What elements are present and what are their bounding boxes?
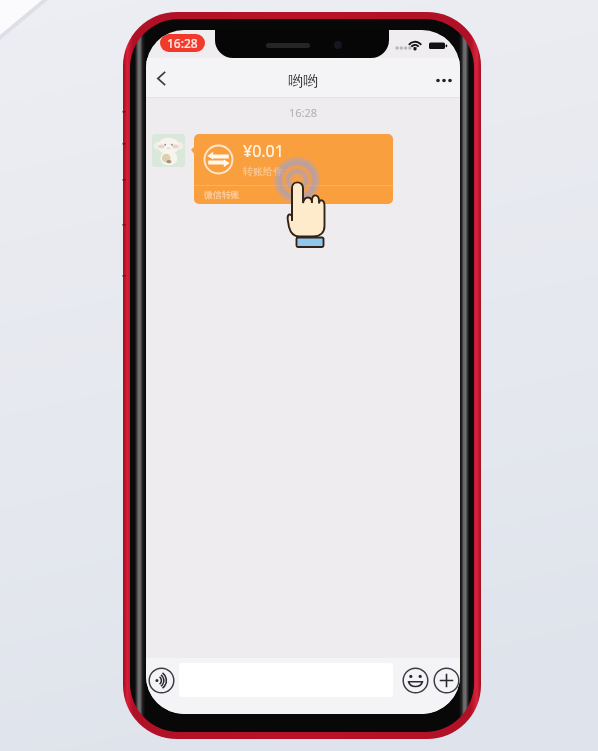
button[interactable]: Emoji <box>401 666 429 694</box>
staticText: 转账给你 <box>243 165 283 178</box>
staticText: 16:28 <box>167 35 198 51</box>
button[interactable]: More <box>432 666 460 694</box>
button[interactable]: More options <box>431 67 457 93</box>
staticText: ¥0.01 <box>243 140 284 162</box>
button[interactable]: Voice input <box>147 666 175 694</box>
button[interactable]: Avatar <box>152 134 185 167</box>
button[interactable]: ¥0.01 <box>194 134 393 204</box>
staticText: 微信转账 <box>204 189 240 200</box>
staticText: 哟哟 <box>288 72 318 91</box>
staticText: 16:28 <box>146 105 460 120</box>
button[interactable]: Back <box>148 65 174 91</box>
